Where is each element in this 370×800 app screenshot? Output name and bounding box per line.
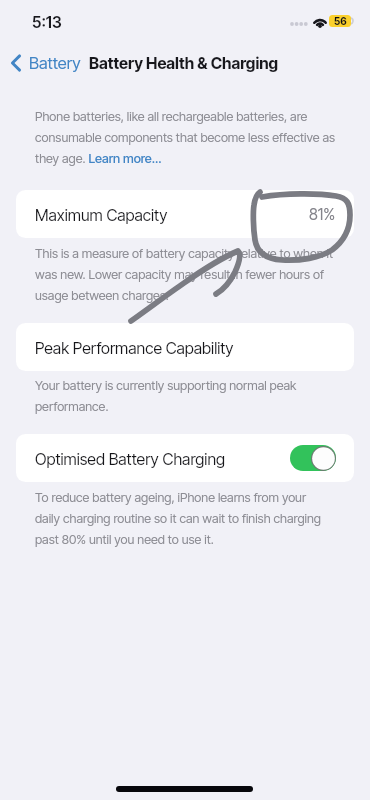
staticText: 81% <box>309 205 336 224</box>
button[interactable]: Optimised Battery Charging <box>290 445 336 471</box>
staticText: 56 <box>334 15 347 27</box>
staticText: Your battery is currently supporting nor… <box>35 374 341 416</box>
staticText: Peak Performance Capability <box>35 338 234 357</box>
button[interactable]: Optimised Battery Charging <box>16 434 354 482</box>
staticText: 5:13 <box>32 13 62 32</box>
staticText: Phone batteries, like all rechargeable b… <box>35 105 341 168</box>
staticText: This is a measure of battery capacity re… <box>35 242 341 305</box>
button[interactable]: Battery <box>5 48 81 78</box>
staticText: Battery <box>29 53 81 73</box>
staticText: Optimised Battery Charging <box>35 449 226 468</box>
staticText: To reduce battery ageing, iPhone learns … <box>35 486 341 549</box>
button[interactable]: Peak Performance Capability <box>16 323 354 371</box>
staticText: Battery Health & Charging <box>89 54 279 73</box>
staticText: Maximum Capacity <box>35 205 168 224</box>
button[interactable]: Maximum Capacity <box>16 190 354 238</box>
